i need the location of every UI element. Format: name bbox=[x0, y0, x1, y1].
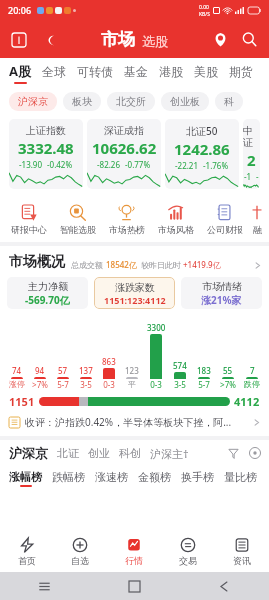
staticText: 美股 bbox=[194, 64, 218, 79]
button[interactable]: 港股 bbox=[159, 64, 183, 83]
button[interactable]: 融 bbox=[249, 204, 265, 235]
button[interactable]: 基金 bbox=[124, 64, 148, 83]
staticText: -1.76% bbox=[203, 160, 229, 171]
staticText: 创业板 bbox=[170, 95, 200, 108]
staticText: 市场风格 bbox=[158, 224, 194, 235]
button[interactable]: 市场风格 bbox=[151, 204, 200, 235]
staticText: 深证成指 bbox=[104, 124, 144, 137]
staticText: 574 bbox=[173, 360, 187, 371]
staticText: -22.21 bbox=[175, 160, 199, 171]
staticText: 收评：沪指跌0.42%，半导体等板块下挫，阿... bbox=[25, 415, 232, 429]
button[interactable]: 金额榜 bbox=[138, 470, 171, 487]
button[interactable]: 全球 bbox=[42, 64, 66, 83]
staticText: 5-7 bbox=[57, 379, 69, 390]
button[interactable]: 智能选股 bbox=[53, 204, 102, 235]
button[interactable]: 中证 bbox=[243, 119, 260, 189]
staticText: 可转债 bbox=[77, 64, 113, 79]
staticText: 跌幅榜 bbox=[52, 470, 85, 484]
staticText: 863 bbox=[102, 356, 116, 367]
staticText: 137 bbox=[79, 365, 93, 376]
staticText: 北证50 bbox=[186, 124, 218, 138]
staticText: 北交所 bbox=[116, 95, 146, 108]
staticText: -0.77% bbox=[125, 159, 151, 170]
staticText: 主力净额 bbox=[28, 280, 68, 293]
button[interactable]: 深证成指 bbox=[87, 119, 161, 189]
staticText: >7% bbox=[32, 379, 48, 390]
button[interactable]: 涨跌家数 bbox=[94, 277, 175, 309]
staticText: 公司财报 bbox=[207, 224, 243, 235]
button[interactable]: 板块 bbox=[63, 92, 101, 111]
button[interactable]: 筛选 bbox=[226, 446, 240, 460]
staticText: 55 bbox=[223, 365, 233, 376]
staticText: 94 bbox=[35, 365, 45, 376]
staticText: A股 bbox=[9, 62, 31, 80]
staticText: 行情 bbox=[125, 555, 143, 566]
staticText: 量比榜 bbox=[224, 470, 257, 484]
button[interactable]: 上证指数 bbox=[9, 119, 83, 189]
button[interactable]: 首页 bbox=[0, 534, 53, 569]
button[interactable]: 设置 bbox=[248, 446, 262, 460]
button[interactable]: 搜索 bbox=[240, 30, 259, 49]
button[interactable]: 北证50 bbox=[165, 119, 239, 189]
staticText: 4112 bbox=[234, 394, 260, 409]
staticText: 3-5 bbox=[80, 379, 92, 390]
button[interactable]: 研报中心 bbox=[4, 204, 53, 235]
staticText: 7 bbox=[250, 365, 255, 376]
button[interactable]: 交易 bbox=[161, 534, 215, 569]
button[interactable]: 公司财报 bbox=[200, 204, 249, 235]
button[interactable]: 北证 bbox=[57, 446, 79, 460]
button[interactable]: 涨幅榜 bbox=[9, 470, 42, 487]
staticText: 涨速榜 bbox=[95, 470, 128, 484]
button[interactable]: 跌幅榜 bbox=[52, 470, 85, 487]
staticText: -13.90 bbox=[19, 159, 43, 170]
button[interactable]: 沪深京 bbox=[9, 92, 57, 111]
staticText: 20:06 bbox=[8, 4, 32, 16]
staticText: 183 bbox=[197, 365, 211, 376]
staticText: 研报中心 bbox=[11, 224, 47, 235]
button[interactable]: 自选 bbox=[53, 534, 107, 569]
button[interactable]: 涨速榜 bbox=[95, 470, 128, 487]
button[interactable]: 主力净额 bbox=[7, 277, 88, 309]
staticText: 资讯 bbox=[233, 555, 251, 566]
button[interactable]: 创业板 bbox=[161, 92, 209, 111]
staticText: 期货 bbox=[229, 64, 253, 79]
staticText: 平 bbox=[128, 379, 136, 389]
staticText: 换手榜 bbox=[181, 470, 214, 484]
staticText: 0-3 bbox=[103, 379, 115, 390]
button[interactable]: 北交所 bbox=[107, 92, 155, 111]
button[interactable]: 市场概况 bbox=[9, 253, 261, 271]
staticText: 市场情绪 bbox=[202, 280, 242, 293]
button[interactable]: 收评：沪指跌0.42%，半导体等板块下挫，阿... bbox=[9, 415, 260, 429]
staticText: 智能选股 bbox=[60, 224, 96, 235]
button[interactable]: 切换布局 bbox=[10, 31, 27, 48]
staticText: 57 bbox=[58, 365, 68, 376]
button[interactable]: 科创 bbox=[119, 446, 141, 460]
staticText: 3-5 bbox=[174, 379, 186, 390]
staticText: - bbox=[256, 171, 259, 182]
button[interactable]: 市场 bbox=[101, 29, 135, 50]
button[interactable]: 换手榜 bbox=[181, 470, 214, 487]
button[interactable]: 市场情绪 bbox=[181, 277, 262, 309]
staticText: +1419.9亿 bbox=[183, 259, 221, 270]
button[interactable]: 期货 bbox=[229, 64, 253, 83]
button[interactable]: 行情 bbox=[107, 534, 161, 569]
button[interactable]: 市场热榜 bbox=[102, 204, 151, 235]
staticText: 全球 bbox=[42, 64, 66, 79]
button[interactable]: 资讯 bbox=[215, 534, 269, 569]
button[interactable]: 沪深主† bbox=[150, 446, 189, 461]
button[interactable]: 沪深京 bbox=[9, 445, 48, 461]
button[interactable]: 量比榜 bbox=[224, 470, 257, 487]
button[interactable]: 选股 bbox=[142, 33, 168, 49]
button[interactable]: A股 bbox=[9, 62, 31, 84]
button[interactable]: 创业 bbox=[88, 446, 110, 460]
button[interactable]: 美股 bbox=[194, 64, 218, 83]
staticText: -82.26 bbox=[97, 159, 121, 170]
staticText: 涨停 bbox=[9, 379, 25, 389]
staticText: 1242.86 bbox=[174, 139, 230, 159]
button[interactable]: 夜间模式 bbox=[41, 31, 58, 48]
button[interactable]: 提醒 bbox=[211, 30, 230, 49]
button[interactable]: 科 bbox=[215, 92, 243, 111]
button[interactable]: 可转债 bbox=[77, 64, 113, 83]
staticText: 较昨日此时 bbox=[141, 260, 181, 270]
staticText: -569.70亿 bbox=[25, 293, 70, 307]
